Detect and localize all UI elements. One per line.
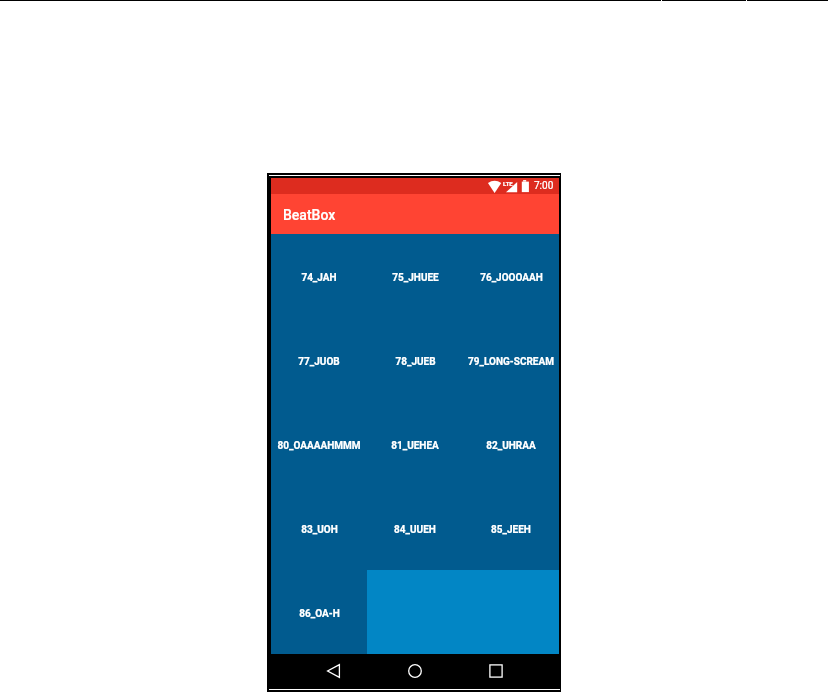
button[interactable]: 82_UHRAA	[463, 402, 559, 486]
button[interactable]: 85_JEEH	[463, 486, 559, 570]
button[interactable]: 79_LONG-SCREAM	[463, 318, 559, 402]
staticText: 80_OAAAAHMMM	[277, 440, 361, 452]
staticText: 76_JOOOAAH	[480, 272, 543, 284]
button[interactable]: 86_OA-H	[271, 570, 367, 654]
button[interactable]: 75_JHUEE	[367, 234, 463, 318]
staticText: 75_JHUEE	[392, 272, 439, 284]
button[interactable]: Recent apps	[472, 654, 520, 688]
button[interactable]: 77_JUOB	[271, 318, 367, 402]
button[interactable]: 80_OAAAAHMMM	[271, 402, 367, 486]
staticText: 74_JAH	[301, 272, 337, 284]
staticText: 83_UOH	[301, 524, 338, 536]
button[interactable]: 84_UUEH	[367, 486, 463, 570]
button[interactable]: Back	[310, 654, 358, 688]
staticText: 86_OA-H	[299, 608, 340, 620]
button[interactable]: 76_JOOOAAH	[463, 234, 559, 318]
staticText: LTE	[503, 180, 513, 187]
staticText: 78_JUEB	[395, 356, 436, 368]
button[interactable]: 83_UOH	[271, 486, 367, 570]
staticText: 85_JEEH	[491, 524, 531, 536]
staticText: 82_UHRAA	[486, 440, 536, 452]
staticText: 84_UUEH	[394, 524, 436, 536]
staticText: 7:00	[534, 180, 554, 192]
staticText: 77_JUOB	[298, 356, 340, 368]
staticText: 81_UEHEA	[391, 440, 439, 452]
button[interactable]: Home	[391, 654, 439, 688]
button[interactable]: 74_JAH	[271, 234, 367, 318]
staticText: BeatBox	[283, 207, 336, 223]
button[interactable]: 78_JUEB	[367, 318, 463, 402]
staticText: 79_LONG-SCREAM	[468, 356, 554, 368]
button[interactable]: 81_UEHEA	[367, 402, 463, 486]
